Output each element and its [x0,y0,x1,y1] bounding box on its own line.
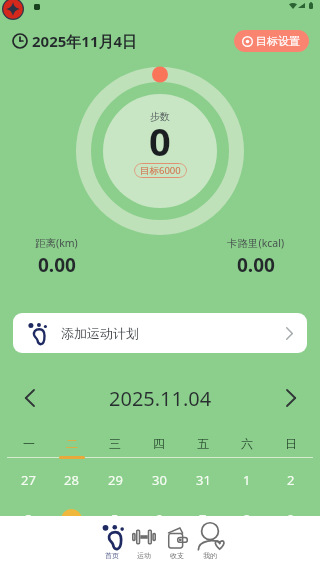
button[interactable]: 收支 [160,516,193,569]
button[interactable]: 9 [269,506,313,532]
staticText: 收支 [170,551,184,560]
button[interactable]: 六 [225,432,269,454]
button[interactable]: 目标6000 [134,163,187,178]
staticText: 四 [153,436,165,451]
button[interactable]: Next day [278,385,304,411]
button[interactable]: 31 [181,469,225,491]
staticText: 目标设置 [256,34,300,48]
staticText: 8 [243,510,251,528]
staticText: 5 [111,510,119,528]
staticText: 卡路里(kcal) [227,236,285,250]
staticText: 首页 [105,551,119,560]
button[interactable]: 运动 [128,516,160,569]
button[interactable]: 5 [93,506,137,532]
staticText: 二 [66,436,78,451]
button[interactable]: 五 [181,432,225,454]
button[interactable]: 目标设置 [234,30,309,52]
button[interactable]: 首页 [96,516,128,569]
staticText: 我的 [203,551,217,560]
button[interactable]: 8 [225,506,269,532]
button[interactable]: 2 [269,469,313,491]
staticText: 30 [152,471,167,489]
staticText: 1 [243,471,251,489]
staticText: 步数 [150,110,170,123]
staticText: 一 [23,436,35,451]
staticText: 27 [21,471,36,489]
staticText: 距离(km) [35,236,78,250]
button[interactable]: 四 [137,432,181,454]
staticText: 28 [64,471,79,489]
staticText: 9 [287,510,295,528]
button[interactable]: 添加运动计划 [13,313,307,353]
staticText: 目标6000 [140,164,181,177]
button[interactable]: 三 [93,432,137,454]
staticText: 6 [155,510,163,528]
staticText: 7 [199,510,207,528]
button[interactable]: 30 [137,469,181,491]
staticText: 2025.11.04 [109,385,212,412]
staticText: 运动 [137,551,151,560]
staticText: 3 [25,510,33,528]
button[interactable]: 二 [50,432,93,454]
button[interactable]: 28 [50,469,93,491]
staticText: 2025年11月4日 [32,31,138,51]
button[interactable]: 7 [181,506,225,532]
staticText: 0 [149,115,171,167]
staticText: 0.00 [237,252,275,276]
staticText: 三 [109,436,121,451]
button[interactable]: 1 [225,469,269,491]
button[interactable]: 日 [269,432,313,454]
button[interactable]: 29 [93,469,137,491]
button[interactable]: 27 [7,469,50,491]
button[interactable]: 3 [7,506,50,532]
staticText: 31 [196,471,211,489]
staticText: 六 [241,436,253,451]
staticText: 29 [108,471,123,489]
button[interactable]: 6 [137,506,181,532]
button[interactable]: 4 [50,506,93,532]
button[interactable]: 我的 [193,516,226,569]
staticText: 0.00 [38,252,76,276]
staticText: 五 [197,436,209,451]
staticText: 日 [285,436,297,451]
button[interactable]: Previous day [16,385,42,411]
staticText: 2 [287,471,295,489]
button[interactable]: 一 [7,432,50,454]
staticText: 4 [68,511,76,529]
staticText: 添加运动计划 [61,325,139,341]
